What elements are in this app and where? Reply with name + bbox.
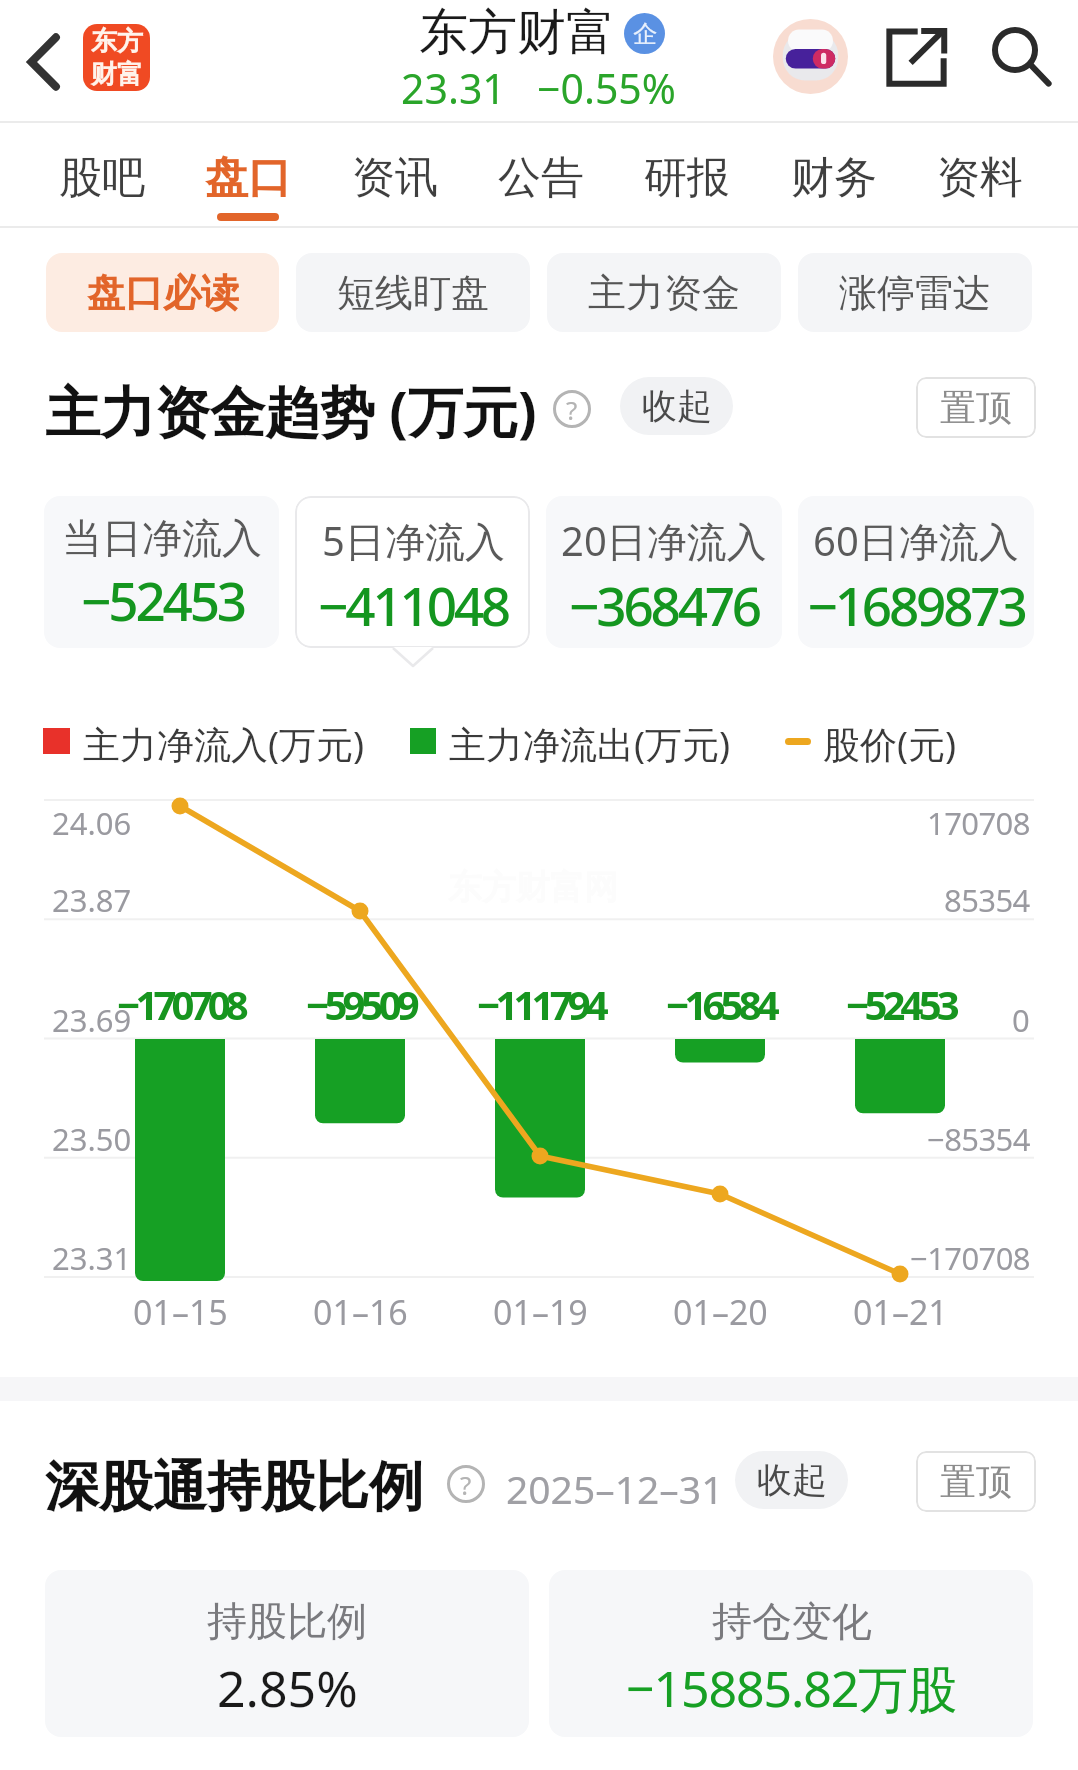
button[interactable]: 资料	[908, 123, 1052, 228]
button[interactable]: Back	[6, 0, 80, 123]
button[interactable]: 涨停雷达	[798, 253, 1032, 332]
button[interactable]: 收起	[735, 1451, 848, 1509]
staticText: 2.85%	[217, 1654, 358, 1722]
staticText: 5日净流入	[322, 513, 505, 568]
staticText: −85354	[927, 1118, 1030, 1160]
button[interactable]: 公告	[469, 123, 613, 228]
staticText: 盘口必读	[87, 269, 239, 317]
staticText: 24.06	[52, 802, 132, 844]
button[interactable]: Search	[982, 18, 1060, 96]
staticText: 股吧	[59, 151, 145, 205]
button[interactable]: Help	[447, 1465, 485, 1503]
staticText: 85354	[944, 879, 1030, 921]
staticText: 主力净流入(万元)	[83, 718, 365, 764]
button[interactable]: East Money	[83, 24, 150, 91]
staticText: −111794	[477, 977, 604, 1031]
staticText: 财务	[791, 151, 877, 205]
staticText: 主力资金	[588, 269, 740, 317]
staticText: −170708	[910, 1237, 1030, 1279]
staticText: −16584	[666, 977, 775, 1031]
staticText: −15885.82万股	[626, 1654, 957, 1722]
staticText: 东方	[91, 25, 143, 58]
staticText: 主力净流出(万元)	[449, 718, 731, 764]
button[interactable]: 盘口	[176, 123, 320, 228]
button[interactable]: 60日净流入	[798, 496, 1034, 648]
staticText: 当日净流入	[62, 513, 262, 563]
button[interactable]: 主力资金	[547, 253, 781, 332]
staticText: 短线盯盘	[337, 269, 489, 317]
staticText: 0	[1012, 999, 1030, 1041]
staticText: 170708	[927, 802, 1030, 844]
staticText: ?	[460, 1467, 472, 1502]
button[interactable]: Share	[877, 18, 955, 96]
staticText: 研报	[644, 151, 730, 205]
staticText: 23.87	[52, 879, 132, 921]
button[interactable]: 20日净流入	[546, 496, 782, 648]
staticText: 公告	[498, 151, 584, 205]
staticText: 深股通持股比例	[45, 1453, 423, 1521]
button[interactable]: Help	[553, 390, 591, 428]
button[interactable]: 持股比例	[45, 1570, 529, 1737]
button[interactable]: 财务	[762, 123, 906, 228]
staticText: 23.50	[52, 1118, 132, 1160]
staticText: 23.69	[52, 999, 132, 1041]
staticText: 资料	[937, 151, 1023, 205]
staticText: 持仓变化	[712, 1596, 872, 1646]
button[interactable]: 资讯	[323, 123, 467, 228]
staticText: 置顶	[940, 1459, 1012, 1504]
staticText: 主力资金趋势 (万元)	[45, 373, 537, 448]
button[interactable]: 股吧	[30, 123, 174, 228]
button[interactable]: 5日净流入	[295, 496, 530, 648]
staticText: 2025–12–31	[506, 1462, 724, 1515]
button[interactable]: 盘口必读	[46, 253, 279, 332]
staticText: 涨停雷达	[839, 269, 991, 317]
button[interactable]: 研报	[615, 123, 759, 228]
staticText: −1689873	[807, 569, 1025, 641]
staticText: 盘口	[205, 151, 291, 205]
staticText: 财富	[91, 58, 143, 91]
button[interactable]: 置顶	[916, 1451, 1036, 1512]
staticText: −59509	[306, 977, 415, 1031]
staticText: −0.55%	[537, 60, 676, 112]
staticText: 股价(元)	[823, 718, 957, 764]
staticText: 收起	[642, 384, 712, 428]
staticText: −52453	[846, 977, 955, 1031]
staticText: 收起	[757, 1458, 827, 1502]
button[interactable]: 置顶	[916, 377, 1036, 438]
staticText: 01–19	[493, 1289, 588, 1335]
staticText: 置顶	[940, 385, 1012, 430]
button[interactable]: 短线盯盘	[296, 253, 530, 332]
staticText: −170708	[117, 977, 244, 1031]
staticText: 东方财富	[419, 2, 615, 64]
staticText: 资讯	[352, 151, 438, 205]
staticText: 20日净流入	[561, 513, 767, 568]
staticText: 01–16	[313, 1289, 408, 1335]
staticText: 01–20	[673, 1289, 768, 1335]
staticText: 企	[633, 19, 657, 49]
staticText: −52453	[81, 564, 244, 636]
staticText: 23.31	[401, 60, 506, 112]
button[interactable]: 收起	[620, 377, 733, 435]
staticText: 01–21	[853, 1289, 948, 1335]
button[interactable]: 当日净流入	[44, 496, 279, 648]
button[interactable]: 持仓变化	[549, 1570, 1033, 1737]
staticText: ?	[566, 392, 578, 427]
staticText: 01–15	[133, 1289, 228, 1335]
staticText: −411048	[318, 569, 508, 641]
staticText: 60日净流入	[813, 513, 1019, 568]
staticText: 持股比例	[207, 1596, 367, 1646]
button[interactable]: AI assistant	[773, 19, 848, 94]
staticText: 23.31	[52, 1237, 132, 1279]
staticText: −368476	[569, 569, 759, 641]
